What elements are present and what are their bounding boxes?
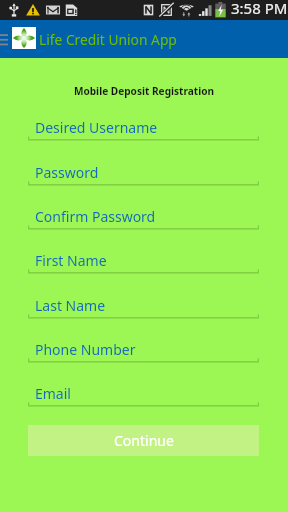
- staticText: First Name: [35, 251, 107, 270]
- staticText: Desired Username: [35, 118, 158, 137]
- staticText: Life Credit Union App: [39, 30, 177, 49]
- staticText: Continue: [114, 431, 174, 450]
- staticText: Email: [35, 384, 71, 403]
- button[interactable]: Password: [28, 154, 259, 186]
- button[interactable]: Last Name: [28, 287, 259, 319]
- staticText: Phone Number: [35, 340, 136, 359]
- button[interactable]: Continue: [28, 425, 259, 456]
- staticText: Password: [35, 163, 99, 182]
- button[interactable]: Open navigation drawer: [0, 20, 13, 58]
- staticText: Last Name: [35, 296, 106, 315]
- staticText: Confirm Password: [35, 207, 156, 226]
- button[interactable]: Confirm Password: [28, 198, 259, 230]
- button[interactable]: Phone Number: [28, 331, 259, 363]
- staticText: 3:58 PM: [231, 0, 288, 18]
- staticText: Mobile Deposit Registration: [0, 84, 288, 98]
- button[interactable]: Desired Username: [28, 109, 259, 141]
- button[interactable]: Email: [28, 375, 259, 407]
- button[interactable]: First Name: [28, 242, 259, 274]
